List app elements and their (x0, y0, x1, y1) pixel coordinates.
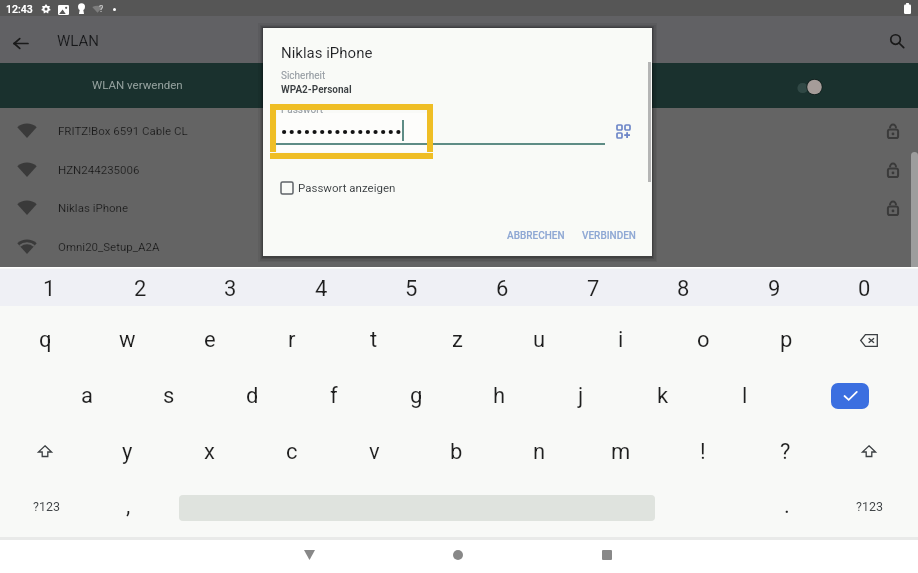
button[interactable]: k (637, 376, 689, 416)
button[interactable]: n (513, 432, 565, 472)
button[interactable]: t (348, 320, 400, 360)
staticText: ?123 (856, 499, 883, 514)
button[interactable]: Recent apps (592, 540, 622, 570)
button[interactable]: 2 (114, 269, 166, 309)
button[interactable]: b (430, 432, 482, 472)
staticText: 5 (405, 276, 418, 302)
button[interactable]: x (183, 432, 235, 472)
staticText: 0 (858, 276, 871, 302)
button[interactable]: e (184, 320, 236, 360)
button[interactable]: Omni20_Setup_A2A (0, 228, 918, 266)
staticText: s (163, 383, 175, 409)
staticText: n (533, 439, 546, 465)
button[interactable]: 1 (23, 269, 75, 309)
staticText: Niklas iPhone (281, 44, 373, 62)
staticText: WLAN verwenden (92, 78, 183, 91)
button[interactable]: FRITZ!Box 6591 Cable CL (0, 112, 918, 150)
button[interactable]: p (760, 320, 812, 360)
button[interactable]: ?123 (843, 486, 895, 526)
staticText: ? (99, 4, 104, 15)
button[interactable]: c (266, 432, 318, 472)
staticText: d (246, 383, 259, 409)
button[interactable]: ABBRECHEN (497, 225, 575, 247)
button[interactable]: ! (677, 432, 729, 472)
button[interactable]: d (226, 376, 278, 416)
button[interactable]: w (101, 320, 153, 360)
button[interactable]: q (19, 320, 71, 360)
button[interactable]: o (677, 320, 729, 360)
button[interactable]: Niklas iPhone (0, 189, 918, 227)
staticText: . (784, 493, 790, 519)
button[interactable]: Backspace (848, 320, 890, 360)
button[interactable]: u (513, 320, 565, 360)
button[interactable]: r (266, 320, 318, 360)
staticText: FRITZ!Box 6591 Cable CL (58, 124, 188, 137)
staticText: Sicherheit (281, 70, 326, 82)
staticText: ! (700, 439, 706, 465)
button[interactable]: VERBINDEN (572, 225, 645, 247)
button[interactable]: 5 (385, 269, 437, 309)
button[interactable]: f (308, 376, 360, 416)
button[interactable]: Search (883, 27, 911, 55)
button[interactable]: Enter (831, 383, 869, 409)
button[interactable]: Back (294, 540, 324, 570)
staticText: ? (780, 439, 791, 465)
staticText: j (578, 383, 584, 409)
staticText: l (742, 383, 748, 409)
staticText: Passwort (281, 104, 324, 116)
button[interactable]: Back (6, 29, 34, 57)
staticText: f (330, 383, 338, 409)
button[interactable]: 9 (748, 269, 800, 309)
button[interactable]: Scan QR code (613, 121, 633, 141)
button[interactable]: 6 (476, 269, 528, 309)
button[interactable]: h (473, 376, 525, 416)
button[interactable]: , (102, 486, 154, 526)
staticText: ABBRECHEN (507, 230, 565, 242)
staticText: 3 (224, 276, 237, 302)
button[interactable]: ?123 (20, 486, 72, 526)
button[interactable]: . (761, 486, 813, 526)
staticText: b (450, 439, 463, 465)
button[interactable]: WLAN verwenden (0, 63, 918, 108)
staticText: z (452, 327, 463, 353)
staticText: Niklas iPhone (58, 201, 129, 214)
button[interactable]: Home (443, 540, 473, 570)
staticText: WPA2-Personal (281, 84, 352, 96)
button[interactable]: z (431, 320, 483, 360)
staticText: 9 (768, 276, 781, 302)
button[interactable]: s (143, 376, 195, 416)
button[interactable]: 4 (295, 269, 347, 309)
button[interactable]: 0 (838, 269, 890, 309)
staticText: Passwort anzeigen (298, 181, 396, 194)
staticText: , (126, 493, 131, 519)
button[interactable]: ? (759, 432, 811, 472)
button[interactable]: v (348, 432, 400, 472)
button[interactable]: a (61, 376, 113, 416)
button[interactable]: g (390, 376, 442, 416)
staticText: a (81, 383, 93, 409)
button[interactable]: i (595, 320, 647, 360)
staticText: 7 (587, 276, 600, 302)
staticText: x (204, 439, 215, 465)
staticText: WLAN (57, 32, 100, 50)
button[interactable]: Shift (24, 432, 66, 472)
button[interactable]: Passwort anzeigen (277, 175, 417, 199)
button[interactable]: 8 (657, 269, 709, 309)
staticText: i (618, 327, 624, 353)
button[interactable]: j (555, 376, 607, 416)
button[interactable]: Shift (848, 432, 890, 472)
button[interactable]: l (719, 376, 771, 416)
staticText: o (697, 327, 710, 353)
button[interactable]: 3 (204, 269, 256, 309)
staticText: h (493, 383, 506, 409)
staticText: t (370, 327, 378, 353)
button[interactable]: HZN244235006 (0, 151, 918, 189)
button[interactable]: 7 (567, 269, 619, 309)
staticText: 12:43 (6, 3, 33, 15)
staticText: Omni20_Setup_A2A (58, 240, 160, 253)
button[interactable]: y (101, 432, 153, 472)
button[interactable]: m (595, 432, 647, 472)
staticText: w (119, 327, 136, 353)
staticText: g (410, 383, 423, 409)
